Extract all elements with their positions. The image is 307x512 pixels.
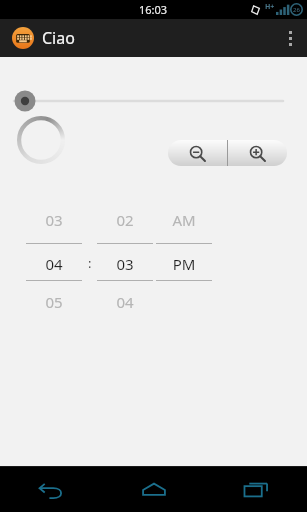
staticText: : xyxy=(88,254,92,272)
staticText: 16:03 xyxy=(139,2,168,17)
staticText: PM xyxy=(156,254,212,274)
button[interactable]: Home xyxy=(103,467,205,512)
staticText: AM xyxy=(156,210,212,230)
staticText: H+ xyxy=(265,2,275,12)
button[interactable]: Zoom out xyxy=(168,140,227,166)
staticText: 26 xyxy=(293,6,300,14)
button[interactable]: AM xyxy=(156,197,212,332)
button[interactable]: Zoom in xyxy=(228,140,287,166)
staticText: 03 xyxy=(26,210,82,230)
staticText: 04 xyxy=(97,292,153,312)
staticText: Ciao xyxy=(42,27,75,49)
button[interactable]: More options xyxy=(273,19,307,57)
staticText: 03 xyxy=(97,254,153,274)
button[interactable]: Back xyxy=(0,467,103,512)
button[interactable]: 03 xyxy=(26,197,82,332)
staticText: 02 xyxy=(97,210,153,230)
staticText: 05 xyxy=(26,292,82,312)
staticText: 04 xyxy=(26,254,82,274)
button[interactable]: Seek bar xyxy=(0,87,307,115)
button[interactable]: Recent apps xyxy=(205,467,307,512)
button[interactable]: 02 xyxy=(97,197,153,332)
